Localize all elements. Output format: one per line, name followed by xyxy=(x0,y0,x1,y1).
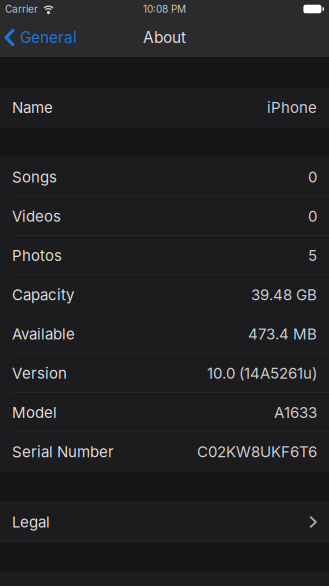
staticText: Photos xyxy=(12,247,62,265)
staticText: iPhone xyxy=(267,98,317,116)
staticText: 0 xyxy=(308,207,317,225)
staticText: 10:08 PM xyxy=(143,3,186,15)
button[interactable]: Back xyxy=(4,28,77,47)
staticText: Songs xyxy=(12,168,57,186)
staticText: Model xyxy=(12,404,57,422)
staticText: Version xyxy=(12,364,67,382)
staticText: Videos xyxy=(12,207,61,225)
staticText: 10.0 (14A5261u) xyxy=(207,364,317,382)
staticText: About xyxy=(143,28,186,47)
staticText: A1633 xyxy=(274,404,317,422)
staticText: Legal xyxy=(12,513,50,531)
button[interactable]: Legal xyxy=(0,502,329,541)
staticText: 0 xyxy=(308,168,317,186)
staticText: 5 xyxy=(308,247,317,265)
staticText: Carrier xyxy=(5,3,38,15)
staticText: Available xyxy=(12,325,75,343)
staticText: 473.4 MB xyxy=(248,325,317,343)
staticText: General xyxy=(20,28,77,47)
staticText: C02KW8UKF6T6 xyxy=(197,443,317,461)
staticText: Name xyxy=(12,98,53,116)
staticText: Serial Number xyxy=(12,443,114,461)
staticText: 39.48 GB xyxy=(251,286,317,304)
button[interactable]: Name xyxy=(0,88,329,126)
staticText: Capacity xyxy=(12,286,74,304)
